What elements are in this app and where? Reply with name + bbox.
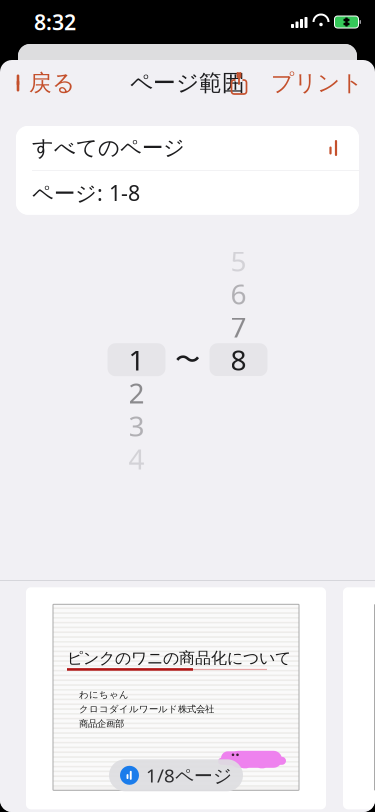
staticText: クロコダイルワールド株式会社 — [79, 703, 214, 715]
staticText: 8 — [230, 341, 246, 378]
button[interactable]: ページ: 1-8 — [16, 171, 359, 215]
staticText: 1/8ページ — [146, 763, 232, 788]
staticText: ページ: 1-8 — [32, 178, 140, 207]
staticText: 6 — [230, 275, 246, 312]
staticText: ピンクのワニの商品化について — [67, 648, 291, 668]
button[interactable]: 1/8ページ — [26, 587, 326, 809]
staticText: ページ範囲 — [130, 69, 245, 97]
staticText: すべてのページ — [32, 135, 185, 161]
button[interactable]: 共有 — [219, 61, 259, 105]
staticText: わにちゃん — [79, 689, 129, 700]
button[interactable]: ページ番号 1 — [107, 244, 165, 475]
staticText: 戻る — [29, 69, 75, 97]
staticText: 4 — [128, 440, 144, 477]
button[interactable]: すべてのページ — [16, 126, 359, 170]
button[interactable]: ページ番号 8 — [209, 244, 267, 475]
staticText: 8:32 — [34, 8, 76, 36]
staticText: 〜 — [175, 344, 200, 375]
staticText: 5 — [230, 242, 246, 279]
button[interactable]: 2ページ目 — [343, 587, 375, 809]
staticText: 7 — [230, 308, 246, 345]
staticText: 3 — [128, 407, 144, 444]
button[interactable]: プリント — [259, 61, 375, 105]
button[interactable]: 戻る — [0, 61, 87, 105]
staticText: 2 — [128, 374, 144, 411]
staticText: 商品企画部 — [79, 718, 124, 729]
staticText: 1 — [128, 341, 144, 378]
staticText: プリント — [271, 69, 363, 97]
